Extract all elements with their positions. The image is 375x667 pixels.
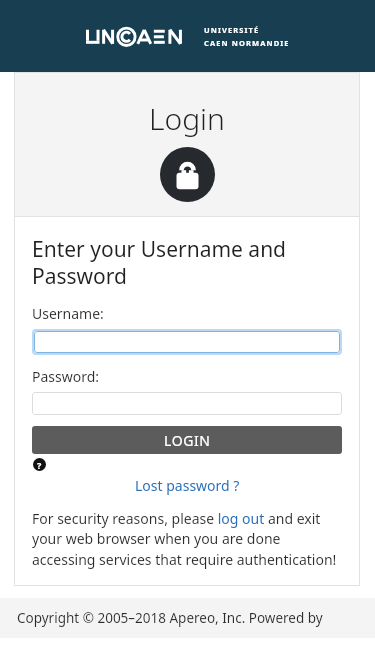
staticText: CAEN NORMANDIE	[204, 38, 290, 48]
staticText: Username:	[32, 304, 104, 323]
staticText: ?	[37, 459, 42, 471]
staticText: Copyright © 2005–2018 Apereo, Inc. Power…	[17, 609, 323, 627]
staticText: For security reasons, please log out and…	[32, 509, 342, 570]
staticText: LOGIN	[164, 431, 211, 450]
button[interactable]: Help	[32, 457, 46, 471]
staticText: Enter your Username and Password	[32, 235, 342, 290]
button[interactable]: LOGIN	[32, 426, 342, 454]
staticText: Lost password ?	[135, 476, 240, 495]
staticText: UNIVERSITÉ	[204, 25, 260, 35]
button[interactable]: Password field	[32, 392, 342, 415]
button[interactable]: Username field	[34, 331, 340, 353]
staticText: Password:	[32, 367, 100, 386]
staticText: Login	[149, 98, 225, 139]
button[interactable]: Lost password ?	[131, 474, 244, 497]
